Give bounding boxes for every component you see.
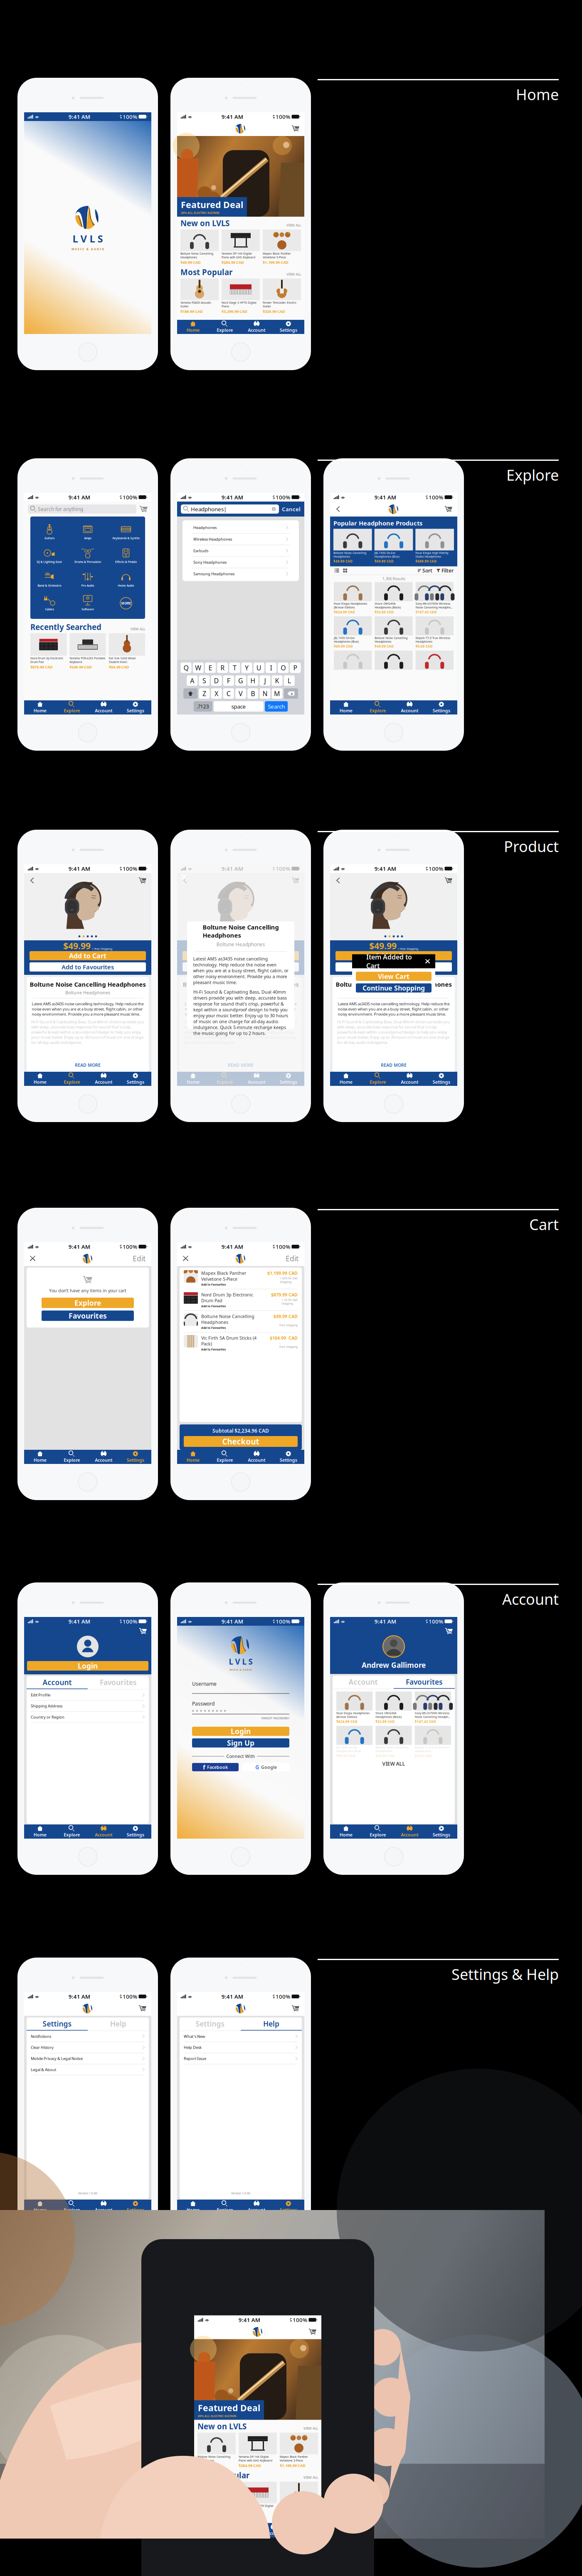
- button[interactable]: Shure SRH240A Headphones (Black): [376, 1692, 412, 1724]
- button[interactable]: Z: [199, 688, 210, 699]
- button[interactable]: Login: [27, 1661, 148, 1671]
- button[interactable]: W: [193, 663, 204, 673]
- button[interactable]: Home: [24, 1072, 56, 1086]
- button[interactable]: Edit: [129, 1250, 149, 1267]
- button[interactable]: E: [205, 663, 216, 673]
- button[interactable]: Fender Telecaster Electric Guitar: [280, 2482, 318, 2517]
- button[interactable]: Y: [241, 663, 252, 673]
- button[interactable]: Home: [330, 1072, 362, 1086]
- button[interactable]: Continue Shopping: [356, 983, 432, 993]
- button[interactable]: Close: [180, 1252, 192, 1265]
- button[interactable]: Settings: [120, 700, 151, 714]
- button[interactable]: Explore: [362, 1072, 394, 1086]
- button[interactable]: Sony Wh-Ch700N Wireless Noise Cancelling…: [416, 582, 454, 614]
- button[interactable]: Settings: [120, 1450, 151, 1464]
- button[interactable]: D: [211, 675, 222, 686]
- button[interactable]: Home: [330, 700, 362, 714]
- button[interactable]: JBL T450 On-Ear Headphones (Blue): [336, 1726, 373, 1758]
- button[interactable]: Cart: [289, 122, 302, 135]
- button[interactable]: Home: [24, 2200, 56, 2214]
- button[interactable]: JBL T450 On-Ear Headphones (Blue): [334, 616, 372, 648]
- button[interactable]: Explore: [362, 1824, 394, 1839]
- button[interactable]: Add to Cart: [182, 951, 299, 960]
- button[interactable]: Cables: [30, 591, 69, 615]
- button[interactable]: Wireless Headphones: [192, 533, 290, 545]
- button[interactable]: Headphones: [192, 522, 290, 533]
- button[interactable]: Home: [330, 1824, 362, 1839]
- button[interactable]: P: [290, 663, 301, 673]
- button[interactable]: Cart: [140, 505, 148, 513]
- button[interactable]: Settings: [273, 1072, 304, 1086]
- button[interactable]: FORGOT PASSWORD?: [192, 1714, 289, 1720]
- button[interactable]: Report Issue: [184, 2053, 298, 2064]
- button[interactable]: Band & Orchestra: [30, 568, 69, 591]
- button[interactable]: Add to Favourites: [30, 962, 146, 972]
- button[interactable]: VIEW ALL: [131, 627, 145, 632]
- button[interactable]: Account: [333, 1676, 394, 1689]
- button[interactable]: Login: [192, 1727, 289, 1736]
- button[interactable]: Cart: [289, 874, 302, 887]
- button[interactable]: Close: [27, 1252, 39, 1265]
- button[interactable]: Boltune Noise Cancelling Headphones: [180, 229, 219, 265]
- button[interactable]: Settings: [425, 700, 457, 714]
- button[interactable]: Settings: [425, 1072, 457, 1086]
- button[interactable]: READ MORE: [75, 1062, 101, 1072]
- button[interactable]: O: [278, 663, 289, 673]
- button[interactable]: Settings: [180, 2017, 241, 2031]
- button[interactable]: Nord Stage 3 HP76 Digital Piano: [222, 279, 260, 314]
- button[interactable]: Clear History: [31, 2042, 145, 2053]
- button[interactable]: Klipsch T5 II True Wireless Headphones: [416, 616, 454, 648]
- button[interactable]: VIEW ALL: [303, 2475, 318, 2480]
- button[interactable]: I: [266, 663, 276, 673]
- button[interactable]: VIEW ALL: [382, 1758, 405, 1767]
- button[interactable]: Settings: [273, 1450, 304, 1464]
- button[interactable]: Home: [177, 1072, 209, 1086]
- button[interactable]: Notifictions: [31, 2031, 145, 2042]
- button[interactable]: Focal Elegia Headphones (Bronze Edition): [336, 1692, 373, 1724]
- button[interactable]: Account: [88, 1072, 120, 1086]
- button[interactable]: Boltune Noise Cancelling Headphones: [184, 1311, 298, 1332]
- button[interactable]: [375, 651, 413, 679]
- button[interactable]: Account: [394, 1824, 425, 1839]
- button[interactable]: Cancel: [282, 505, 301, 513]
- button[interactable]: Account: [258, 2523, 290, 2537]
- button[interactable]: View Cart: [356, 972, 432, 981]
- button[interactable]: Settings: [273, 2200, 304, 2214]
- button[interactable]: [334, 651, 372, 679]
- button[interactable]: Account: [241, 1072, 273, 1086]
- button[interactable]: VIEW ALL: [286, 223, 301, 228]
- button[interactable]: U: [254, 663, 264, 673]
- button[interactable]: Dismiss: [425, 959, 431, 964]
- button[interactable]: Boltune Noise Cancelling Headphones: [197, 2433, 236, 2468]
- button[interactable]: R: [217, 663, 228, 673]
- button[interactable]: N: [260, 688, 270, 699]
- button[interactable]: Account: [88, 1824, 120, 1839]
- button[interactable]: Boltune Noise Cancelling Headphones: [375, 616, 413, 648]
- button[interactable]: DJ & Lighting Gear: [30, 544, 69, 568]
- button[interactable]: Settings: [273, 320, 304, 334]
- button[interactable]: Home: [24, 700, 56, 714]
- button[interactable]: G: [243, 1763, 289, 1771]
- button[interactable]: Keyboards & Synths: [107, 520, 145, 544]
- button[interactable]: Account: [27, 1676, 88, 1689]
- button[interactable]: Klipsch T5 II True Wireless Headphones: [415, 1726, 451, 1758]
- button[interactable]: Shure SRH240A Headphones (Black): [375, 582, 413, 614]
- button[interactable]: Mapex Black Panther Velvetone 5-Piece: [263, 229, 301, 265]
- button[interactable]: Fender Telecaster Electric Guitar: [263, 279, 301, 314]
- button[interactable]: What's New: [184, 2031, 298, 2042]
- button[interactable]: READ MORE: [228, 1062, 254, 1072]
- button[interactable]: Focal Elegia High Fidelity Studio Headph…: [415, 529, 454, 563]
- button[interactable]: Close: [177, 870, 191, 884]
- button[interactable]: Explore: [56, 1824, 88, 1839]
- button[interactable]: VIEW ALL: [303, 2426, 318, 2431]
- button[interactable]: Settings: [120, 1072, 151, 1086]
- button[interactable]: F: [223, 675, 234, 686]
- button[interactable]: Explore: [209, 1072, 241, 1086]
- button[interactable]: Home: [24, 1824, 56, 1839]
- button[interactable]: Home: [24, 1450, 56, 1464]
- button[interactable]: Delete: [284, 688, 298, 699]
- button[interactable]: JBL T450 On-Ear Headphones (Blue): [374, 529, 413, 563]
